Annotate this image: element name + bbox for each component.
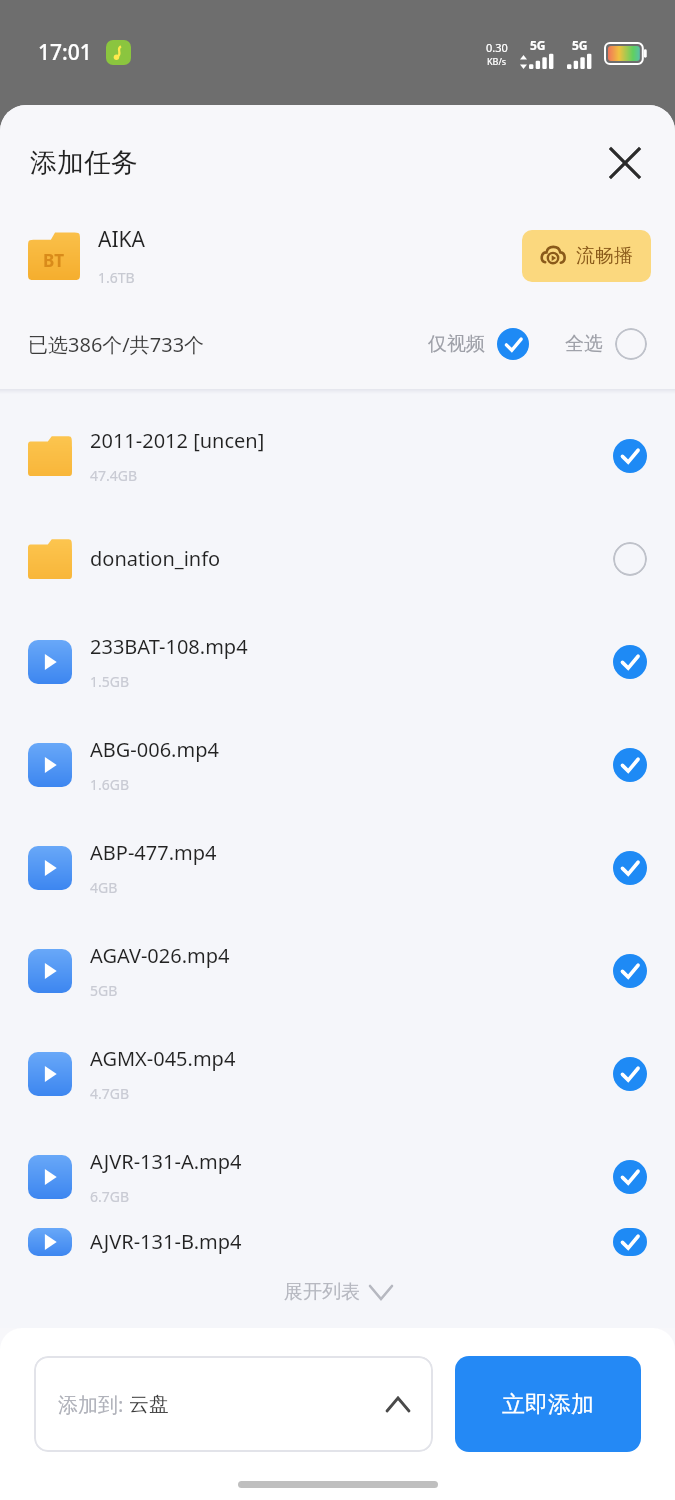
staticText: AIKA bbox=[98, 225, 145, 254]
staticText: 1.6GB bbox=[90, 775, 130, 794]
staticText: ABP-477.mp4 bbox=[90, 839, 217, 866]
staticText: donation_info bbox=[90, 545, 221, 572]
button[interactable]: AGMX-045.mp4 bbox=[0, 1022, 675, 1125]
staticText: 云盘 bbox=[129, 1392, 169, 1417]
staticText: 233BAT-108.mp4 bbox=[90, 633, 248, 660]
staticText: 17:01 bbox=[38, 38, 92, 67]
staticText: 0.30 bbox=[486, 40, 508, 55]
button[interactable]: 添加到: bbox=[34, 1356, 433, 1452]
button[interactable]: AJVR-131-A.mp4 bbox=[0, 1125, 675, 1228]
staticText: 立即添加 bbox=[502, 1390, 594, 1419]
staticText: 5G bbox=[572, 37, 588, 53]
staticText: AGMX-045.mp4 bbox=[90, 1045, 236, 1072]
button[interactable]: AGAV-026.mp4 bbox=[0, 919, 675, 1022]
staticText: 5GB bbox=[90, 981, 118, 1000]
button[interactable]: ABP-477.mp4 bbox=[0, 816, 675, 919]
button[interactable]: 全选 bbox=[565, 328, 647, 360]
staticText: AGAV-026.mp4 bbox=[90, 942, 230, 969]
button[interactable]: 233BAT-108.mp4 bbox=[0, 610, 675, 713]
button[interactable]: ABG-006.mp4 bbox=[0, 713, 675, 816]
button[interactable]: Close bbox=[603, 141, 647, 185]
staticText: 47.4GB bbox=[90, 466, 138, 485]
staticText: 流畅播 bbox=[576, 244, 633, 268]
button[interactable]: 流畅播 bbox=[522, 230, 651, 282]
button[interactable]: 仅视频 bbox=[428, 328, 529, 360]
staticText: BT bbox=[43, 249, 65, 272]
staticText: 添加任务 bbox=[30, 146, 138, 180]
button[interactable]: 2011-2012 [uncen] bbox=[0, 404, 675, 507]
staticText: 已选386个/共733个 bbox=[28, 331, 205, 358]
button[interactable]: 展开列表 bbox=[284, 1280, 392, 1304]
staticText: 6.7GB bbox=[90, 1187, 130, 1206]
staticText: 1.5GB bbox=[90, 672, 130, 691]
staticText: AJVR-131-B.mp4 bbox=[90, 1228, 242, 1255]
staticText: ABG-006.mp4 bbox=[90, 736, 219, 763]
staticText: 5G bbox=[530, 37, 546, 53]
staticText: 2011-2012 [uncen] bbox=[90, 427, 265, 454]
staticText: 添加到: bbox=[58, 1391, 129, 1418]
staticText: 全选 bbox=[565, 332, 603, 356]
staticText: 4.7GB bbox=[90, 1084, 130, 1103]
button[interactable]: donation_info bbox=[0, 507, 675, 610]
staticText: 仅视频 bbox=[428, 332, 485, 356]
button[interactable]: 立即添加 bbox=[455, 1356, 641, 1452]
button[interactable]: AJVR-131-B.mp4 bbox=[0, 1228, 675, 1256]
staticText: KB/s bbox=[487, 55, 507, 67]
staticText: 4GB bbox=[90, 878, 118, 897]
staticText: AJVR-131-A.mp4 bbox=[90, 1148, 242, 1175]
staticText: 1.6TB bbox=[98, 268, 135, 287]
staticText: 展开列表 bbox=[284, 1280, 360, 1304]
